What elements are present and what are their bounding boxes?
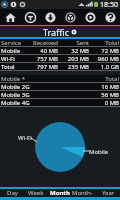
staticText: Service	[1, 39, 27, 47]
staticText: Traffic	[43, 26, 69, 37]
staticText: Month	[50, 189, 70, 197]
button[interactable]: Mobile 2G	[0, 83, 120, 91]
staticText: Sent	[58, 39, 89, 47]
button[interactable]: Mobile 3G	[0, 91, 120, 99]
staticText: 1.0 GB	[89, 63, 119, 71]
button[interactable]: Home	[0, 9, 20, 25]
button[interactable]: Service	[0, 39, 120, 47]
staticText: 960 MB	[89, 55, 119, 63]
staticText: 18:50	[100, 0, 118, 9]
staticText: Wi-Fi	[18, 134, 32, 142]
staticText: Total	[89, 39, 119, 47]
staticText: Day	[7, 189, 18, 197]
button[interactable]: Mobile 4G	[0, 99, 120, 107]
staticText: 0 MB	[89, 99, 119, 107]
button[interactable]: Traffic	[20, 9, 40, 25]
button[interactable]: Total	[0, 63, 120, 71]
staticText: 16 MB	[89, 83, 119, 91]
staticText: Mobile 3G	[1, 91, 89, 99]
button[interactable]: Traffic	[0, 26, 120, 37]
button[interactable]: Month	[48, 189, 72, 197]
staticText: 32 MB	[58, 47, 89, 55]
staticText: 235 MB	[58, 63, 89, 71]
button[interactable]: Help	[100, 9, 120, 25]
staticText: Month-1	[72, 189, 96, 197]
button[interactable]: Week	[24, 189, 48, 197]
staticText: 72 MB	[89, 47, 119, 55]
staticText: Total	[1, 63, 27, 71]
button[interactable]: Year	[96, 189, 120, 197]
staticText: Year	[102, 189, 115, 197]
staticText: Mobile 4G	[1, 99, 89, 107]
staticText: Mobile	[1, 47, 27, 55]
staticText: 56 MB	[89, 91, 119, 99]
staticText: Mobile *	[1, 75, 89, 83]
staticText: Wi-Fi	[1, 55, 27, 63]
staticText: Mobile	[89, 148, 109, 156]
staticText: Total	[89, 75, 119, 83]
button[interactable]: Mobile	[0, 47, 120, 55]
button[interactable]: Download	[40, 9, 60, 25]
button[interactable]: Wi-Fi	[0, 55, 120, 63]
button[interactable]: Record	[80, 9, 100, 25]
staticText: 40 MB	[27, 47, 58, 55]
staticText: 203 MB	[58, 55, 89, 63]
staticText: 797 MB	[27, 63, 58, 71]
staticText: Week	[28, 189, 44, 197]
button[interactable]: Month-1	[72, 189, 96, 197]
button[interactable]: Mobile *	[0, 75, 120, 83]
staticText: 757 MB	[27, 55, 58, 63]
button[interactable]: Network	[60, 9, 80, 25]
staticText: Mobile 2G	[1, 83, 89, 91]
button[interactable]: Day	[0, 189, 24, 197]
staticText: Received	[27, 39, 58, 47]
